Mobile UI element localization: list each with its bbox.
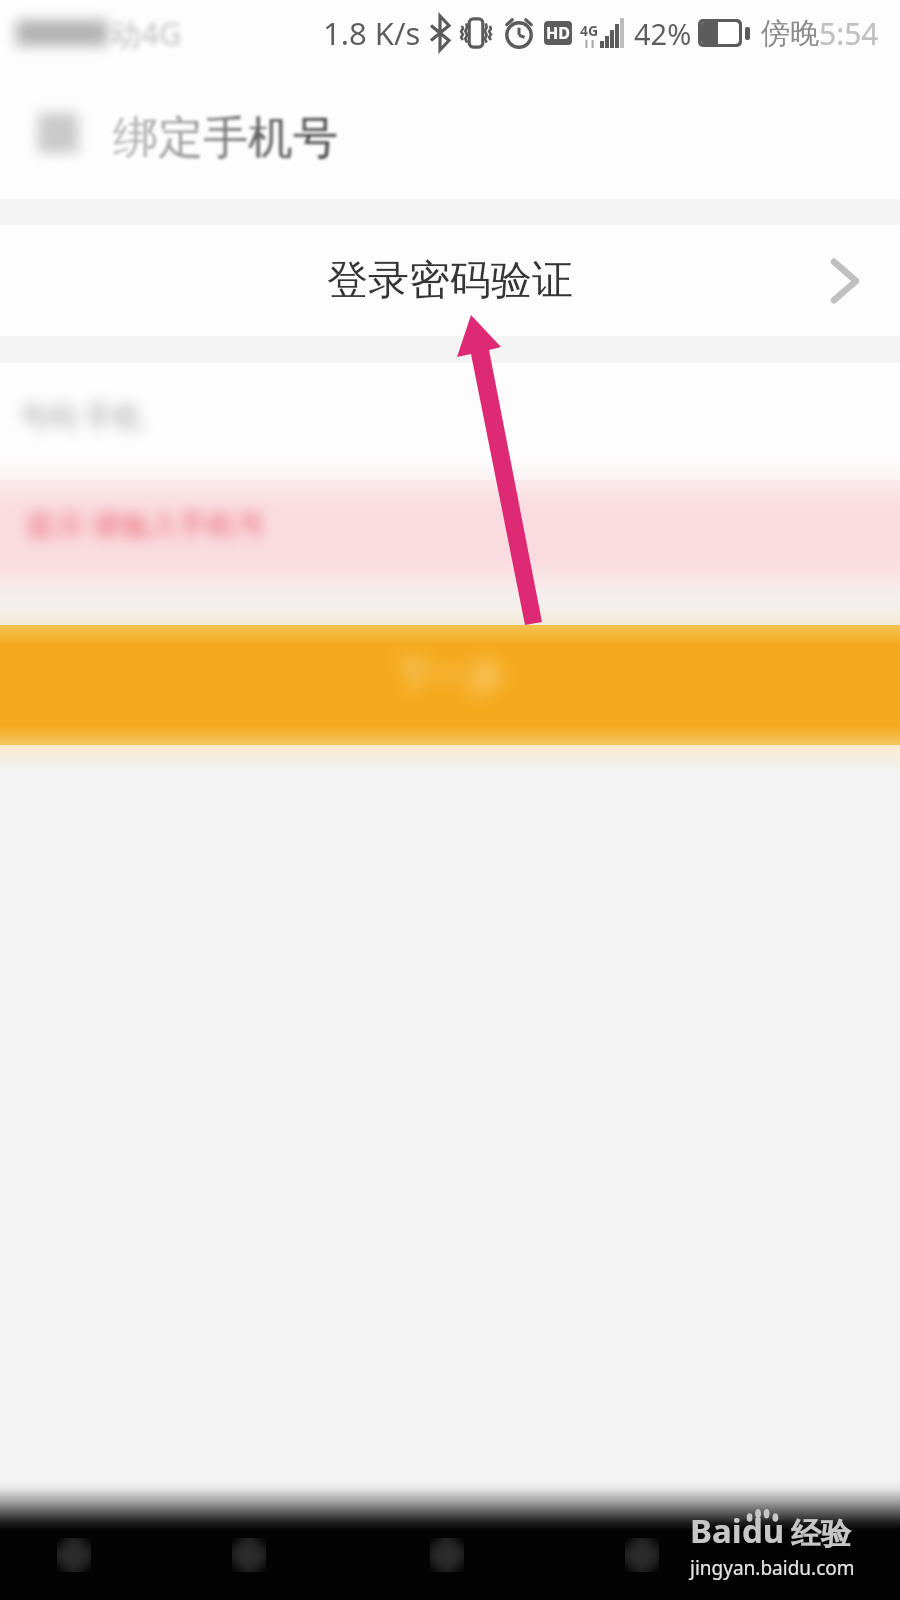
button[interactable]: Home [430,1538,464,1572]
button[interactable]: 登录密码验证 [0,225,900,336]
staticText: 号码 手机 [19,396,143,436]
button[interactable]: 下一步 [0,625,900,745]
button[interactable]: Menu [625,1538,659,1572]
button[interactable]: Back [232,1538,266,1572]
staticText: 绑定手机号 [113,110,338,167]
staticText: 1.8 K/s [323,12,421,54]
button[interactable]: Recent apps [57,1538,91,1572]
staticText: 经验 [791,1515,851,1553]
staticText: 5:54 [819,13,879,54]
staticText: HD [546,22,570,44]
staticText: du [742,1508,785,1553]
staticText: 傍晚 [761,15,819,52]
staticText: 42% [634,14,692,53]
staticText: jingyan.baidu.com [690,1555,855,1581]
button[interactable]: Back [38,113,78,153]
staticText: 登录密码验证 [327,255,573,307]
staticText: 4G [580,21,599,40]
staticText: 动4G [110,12,182,54]
staticText: 提示 请输入手机号 [26,504,266,544]
staticText: 下一步 [396,653,504,698]
staticText: Bai [690,1508,742,1553]
